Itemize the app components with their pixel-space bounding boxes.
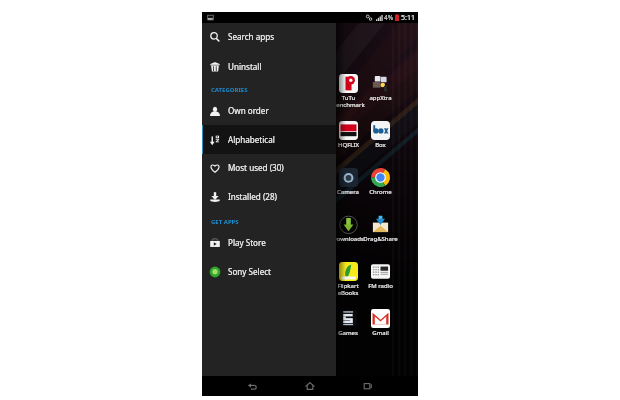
button[interactable]: Uninstall: [202, 52, 336, 81]
staticText: Flipkart eBooks: [337, 282, 359, 297]
staticText: Own order: [228, 105, 269, 116]
staticText: Play Store: [228, 237, 266, 248]
button[interactable]: appXtra: [359, 74, 401, 102]
button[interactable]: Home: [290, 376, 330, 396]
staticText: Search apps: [228, 31, 275, 42]
staticText: Uninstall: [228, 61, 262, 72]
staticText: 4%: [384, 13, 394, 22]
staticText: TuTu Benchmark: [332, 94, 365, 109]
staticText: Alphabetical: [228, 134, 275, 145]
staticText: 5:11: [401, 13, 415, 23]
staticText: Downloads: [332, 235, 364, 243]
button[interactable]: Camera: [327, 168, 369, 196]
button[interactable]: Box: [359, 121, 401, 149]
button[interactable]: Installed (28): [202, 182, 336, 211]
button[interactable]: Alphabetical: [202, 125, 336, 154]
staticText: appXtra: [369, 94, 392, 102]
staticText: Sony Select: [228, 266, 272, 277]
staticText: Most used (30): [228, 162, 284, 173]
button[interactable]: Own order: [202, 96, 336, 125]
button[interactable]: Games: [327, 309, 369, 337]
staticText: HQFLIX: [338, 141, 359, 149]
staticText: Games: [338, 329, 358, 337]
staticText: CATEGORIES: [211, 86, 248, 94]
button[interactable]: Most used (30): [202, 153, 336, 182]
button[interactable]: Search apps: [202, 22, 336, 51]
button[interactable]: Sony Select: [202, 257, 336, 286]
staticText: Drag&Share: [363, 235, 398, 243]
staticText: FM radio: [368, 282, 393, 290]
button[interactable]: FM radio: [359, 262, 401, 290]
button[interactable]: Play Store: [202, 228, 336, 257]
staticText: GET APPS: [211, 218, 239, 226]
staticText: Chrome: [369, 188, 392, 196]
button[interactable]: TuTu Benchmark: [327, 74, 369, 109]
staticText: Box: [375, 141, 386, 149]
button[interactable]: Gmail: [359, 309, 401, 337]
button[interactable]: Recent apps: [348, 376, 388, 396]
staticText: Camera: [337, 188, 359, 196]
button[interactable]: HQFLIX: [327, 121, 369, 149]
button[interactable]: Chrome: [359, 168, 401, 196]
button[interactable]: Drag&Share: [359, 215, 401, 243]
staticText: Gmail: [372, 329, 389, 337]
button[interactable]: Back: [232, 376, 272, 396]
staticText: Installed (28): [228, 191, 278, 202]
button[interactable]: Flipkart eBooks: [327, 262, 369, 297]
button[interactable]: Downloads: [327, 215, 369, 243]
